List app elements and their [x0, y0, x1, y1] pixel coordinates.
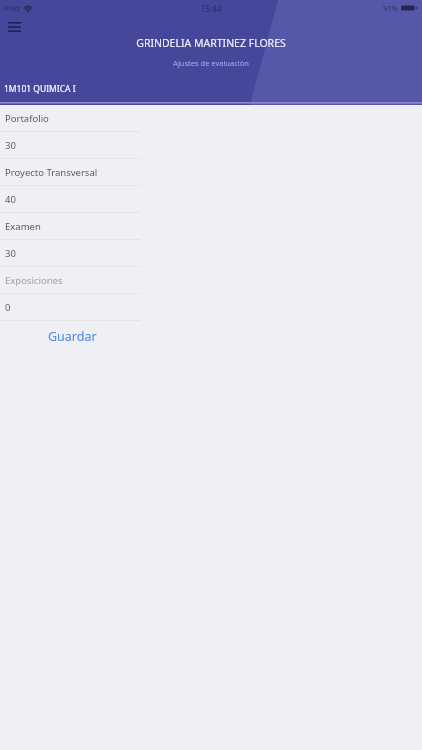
staticText: Proyecto Transversal [5, 166, 98, 179]
staticText: 1M101 QUIMICA I [4, 83, 76, 95]
button[interactable]: 30 [0, 132, 145, 158]
staticText: iPad [4, 3, 20, 13]
staticText: Portafolio [5, 112, 49, 125]
button[interactable]: Guardar [34, 323, 111, 350]
staticText: Examen [5, 220, 41, 233]
staticText: 0 [5, 301, 11, 314]
button[interactable]: Portafolio [0, 105, 145, 131]
button[interactable]: 30 [0, 240, 145, 266]
button[interactable]: Examen [0, 213, 145, 239]
staticText: 91% [383, 3, 398, 13]
staticText: 30 [5, 247, 16, 260]
staticText: Guardar [48, 328, 97, 345]
staticText: 40 [5, 193, 16, 206]
button[interactable]: 40 [0, 186, 145, 212]
button[interactable]: Exposiciones [0, 267, 145, 293]
staticText: 15:44 [201, 3, 222, 14]
button[interactable]: 0 [0, 294, 145, 320]
staticText: GRINDELIA MARTINEZ FLORES [136, 36, 286, 50]
staticText: Exposiciones [5, 274, 63, 287]
staticText: Ajustes de evaluación [173, 58, 249, 68]
button[interactable]: Menu [3, 16, 25, 38]
staticText: 30 [5, 139, 16, 152]
button[interactable]: Proyecto Transversal [0, 159, 145, 185]
